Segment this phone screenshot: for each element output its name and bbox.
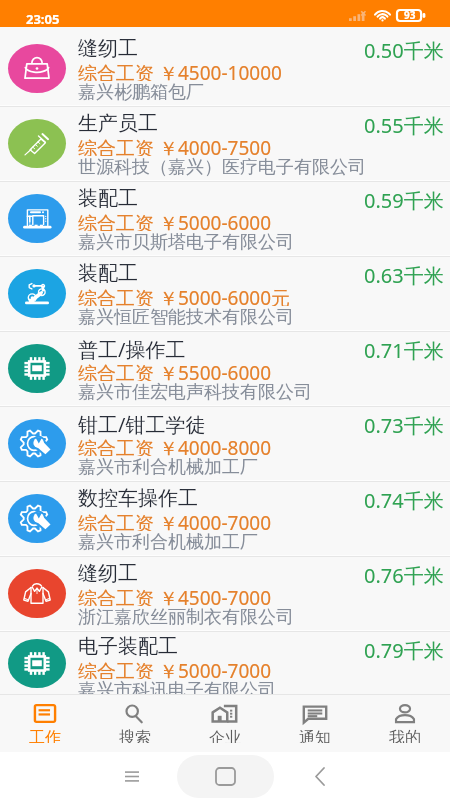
staticText: 0.74千米 bbox=[364, 487, 444, 514]
button[interactable]: 通知 bbox=[270, 695, 360, 752]
staticText: 综合工资 ￥5000-6000元 bbox=[78, 285, 291, 306]
button[interactable]: 装配工 bbox=[0, 257, 450, 332]
button[interactable]: Home bbox=[177, 755, 274, 798]
staticText: 通知 bbox=[299, 728, 331, 743]
button[interactable]: 电子装配工 bbox=[0, 632, 450, 694]
staticText: 数控车操作工 bbox=[78, 486, 198, 510]
staticText: 工作 bbox=[29, 728, 61, 743]
staticText: 93 bbox=[404, 8, 416, 22]
staticText: 综合工资 ￥4500-10000 bbox=[78, 60, 282, 81]
staticText: 0.55千米 bbox=[364, 112, 444, 139]
staticText: 嘉兴彬鹏箱包厂 bbox=[78, 81, 204, 103]
staticText: 缝纫工 bbox=[78, 36, 138, 60]
button[interactable]: 装配工 bbox=[0, 182, 450, 257]
button[interactable]: 我的 bbox=[360, 695, 450, 752]
staticText: 综合工资 ￥5000-7000 bbox=[78, 658, 272, 679]
button[interactable]: 生产员工 bbox=[0, 107, 450, 182]
button[interactable]: 缝纫工 bbox=[0, 32, 450, 107]
staticText: 浙江嘉欣丝丽制衣有限公司 bbox=[78, 606, 294, 628]
staticText: 企业 bbox=[209, 728, 241, 743]
staticText: 0.50千米 bbox=[364, 37, 444, 64]
staticText: 综合工资 ￥4000-7000 bbox=[78, 510, 272, 531]
staticText: 综合工资 ￥5500-6000 bbox=[78, 360, 272, 381]
staticText: 0.63千米 bbox=[364, 262, 444, 289]
staticText: 我的 bbox=[389, 728, 421, 743]
button[interactable]: 普工/操作工 bbox=[0, 332, 450, 407]
staticText: 搜索 bbox=[119, 728, 151, 743]
staticText: 嘉兴市利合机械加工厂 bbox=[78, 456, 258, 478]
staticText: 综合工资 ￥5000-6000 bbox=[78, 210, 272, 231]
staticText: 0.76千米 bbox=[364, 562, 444, 589]
button[interactable]: 缝纫工 bbox=[0, 557, 450, 632]
staticText: 0.71千米 bbox=[364, 337, 444, 364]
button[interactable]: 搜索 bbox=[90, 695, 180, 752]
staticText: 嘉兴市利合机械加工厂 bbox=[78, 531, 258, 553]
staticText: 缝纫工 bbox=[78, 561, 138, 585]
button[interactable]: 企业 bbox=[180, 695, 270, 752]
staticText: 嘉兴市贝斯塔电子有限公司 bbox=[78, 231, 294, 253]
staticText: 世源科技（嘉兴）医疗电子有限公司 bbox=[78, 156, 366, 178]
staticText: 嘉兴市科讯电子有限公司 bbox=[78, 679, 276, 694]
staticText: 0.59千米 bbox=[364, 187, 444, 214]
staticText: 嘉兴市佳宏电声科技有限公司 bbox=[78, 381, 312, 403]
button[interactable]: Recents bbox=[115, 759, 149, 793]
staticText: 电子装配工 bbox=[78, 634, 178, 658]
staticText: 0.73千米 bbox=[364, 412, 444, 439]
button[interactable]: 工作 bbox=[0, 695, 90, 752]
staticText: 0.79千米 bbox=[364, 637, 444, 664]
staticText: 装配工 bbox=[78, 186, 138, 210]
staticText: 钳工/钳工学徒 bbox=[78, 411, 206, 435]
button[interactable]: 数控车操作工 bbox=[0, 482, 450, 557]
staticText: 普工/操作工 bbox=[78, 336, 186, 360]
staticText: 装配工 bbox=[78, 261, 138, 285]
staticText: 嘉兴恒匠智能技术有限公司 bbox=[78, 306, 294, 328]
staticText: 综合工资 ￥4000-7500 bbox=[78, 135, 272, 156]
staticText: 23:05 bbox=[26, 10, 60, 27]
staticText: 生产员工 bbox=[78, 111, 158, 135]
staticText: 综合工资 ￥4000-8000 bbox=[78, 435, 272, 456]
staticText: 综合工资 ￥4500-7000 bbox=[78, 585, 272, 606]
button[interactable]: 钳工/钳工学徒 bbox=[0, 407, 450, 482]
button[interactable]: Back bbox=[303, 759, 337, 793]
